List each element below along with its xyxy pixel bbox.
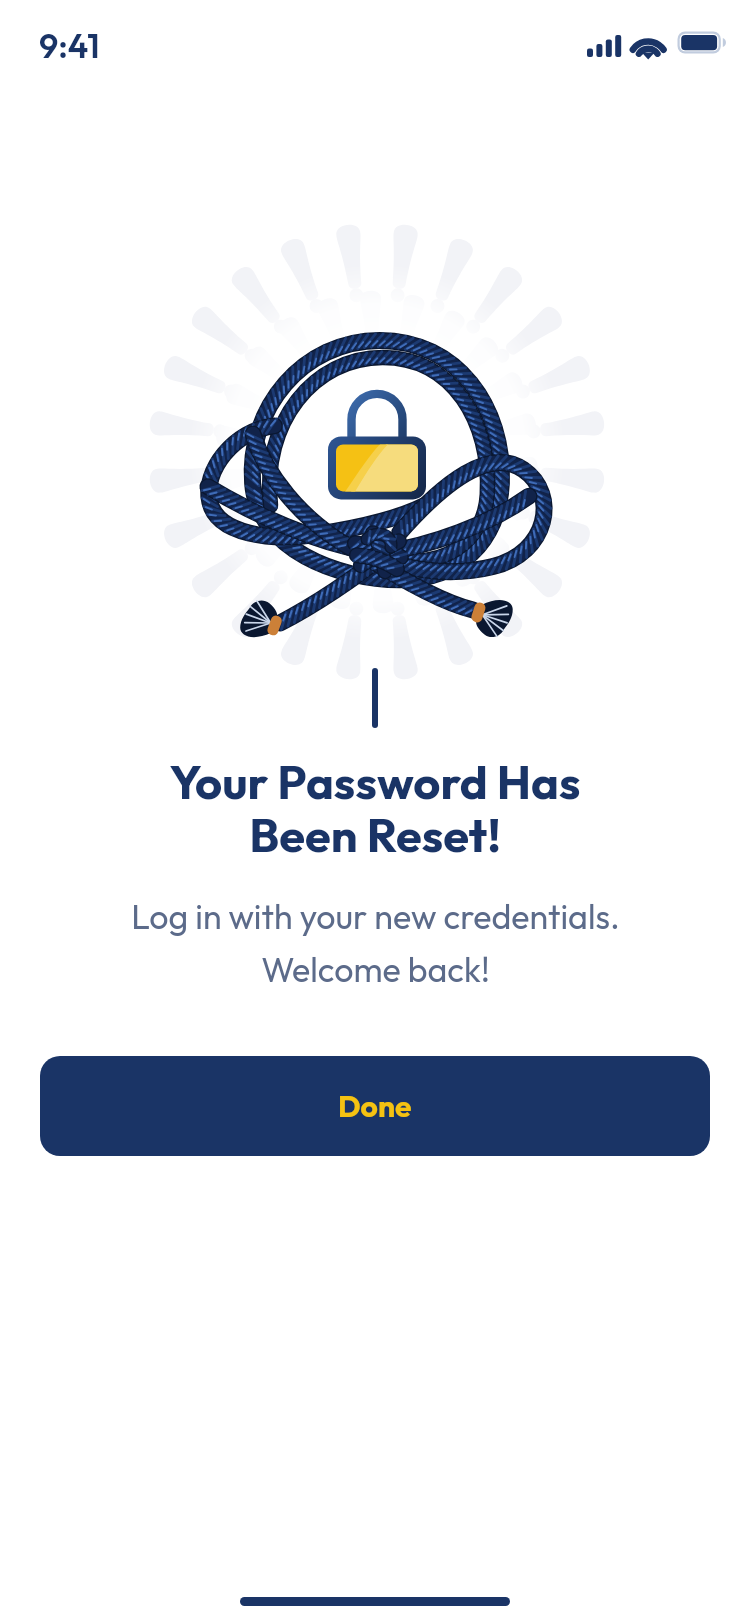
staticText: 9:41	[39, 24, 100, 67]
staticText: Your Password Has Been Reset!	[169, 752, 581, 864]
staticText: Done	[338, 1087, 412, 1125]
button[interactable]: Done	[40, 1056, 710, 1156]
staticText: Log in with your new credentials. Welcom…	[131, 895, 620, 991]
